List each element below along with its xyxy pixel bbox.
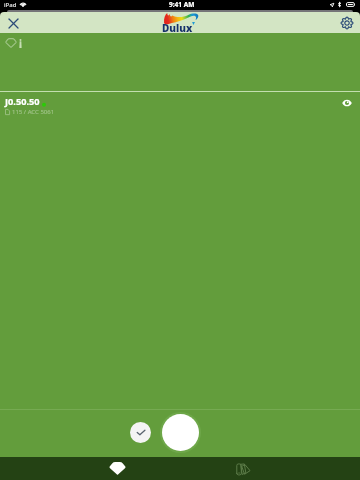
button[interactable]: Take photo (162, 414, 199, 451)
button[interactable]: Settings (339, 15, 355, 31)
button[interactable]: Close (5, 15, 21, 31)
button[interactable]: J0.50.50 (0, 92, 360, 117)
staticText: 9:41 AM (169, 0, 195, 9)
button[interactable]: Colour details (3, 36, 24, 50)
button[interactable]: Paint (211, 457, 273, 480)
button[interactable]: Confirm (130, 422, 151, 443)
staticText: J0.50.50 (5, 95, 40, 108)
staticText: Dulux (162, 21, 193, 33)
staticText: iPad (4, 1, 17, 9)
staticText: 115 / ACC 5061 (12, 108, 55, 116)
button[interactable]: Preview colour (337, 93, 356, 112)
button[interactable]: Colours (86, 457, 148, 480)
